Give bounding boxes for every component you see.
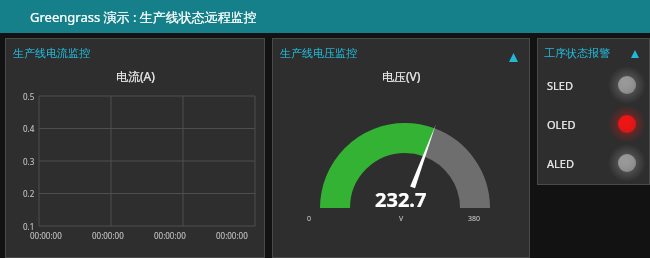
staticText: 电流(A) [116, 68, 155, 84]
button[interactable]: Collapse alarms [627, 46, 643, 62]
button[interactable]: 生产线电流监控 [5, 38, 265, 258]
staticText: 380 [468, 214, 481, 224]
staticText: 00:00:00 [154, 230, 186, 241]
staticText: 工序状态报警 [544, 46, 610, 60]
button[interactable]: ALED [537, 146, 650, 180]
staticText: Greengrass 演示 : 生产线状态远程监控 [30, 8, 257, 26]
staticText: V [399, 214, 404, 224]
button[interactable]: Greengrass 演示 : 生产线状态远程监控 [0, 0, 650, 33]
staticText: SLED [547, 78, 573, 93]
staticText: 0.2 [23, 188, 35, 199]
staticText: ALED [547, 156, 574, 171]
staticText: 生产线电压监控 [280, 46, 357, 60]
staticText: 0.5 [23, 91, 35, 102]
button[interactable]: 工序状态报警 [537, 38, 650, 185]
button[interactable]: SLED [537, 68, 650, 102]
staticText: 00:00:00 [216, 230, 248, 241]
button[interactable]: 生产线电压监控 [272, 38, 530, 258]
staticText: 电压(V) [382, 68, 421, 84]
staticText: 00:00:00 [30, 230, 62, 241]
staticText: 00:00:00 [92, 230, 124, 241]
staticText: 生产线电流监控 [13, 46, 90, 60]
button[interactable]: OLED [537, 107, 650, 141]
staticText: 0.4 [23, 123, 35, 134]
staticText: 0.3 [23, 156, 35, 167]
staticText: 0 [307, 214, 312, 224]
button[interactable]: Collapse [504, 48, 522, 66]
staticText: 232.7 [375, 186, 427, 213]
staticText: OLED [547, 117, 576, 132]
staticText: 0.1 [23, 221, 35, 232]
